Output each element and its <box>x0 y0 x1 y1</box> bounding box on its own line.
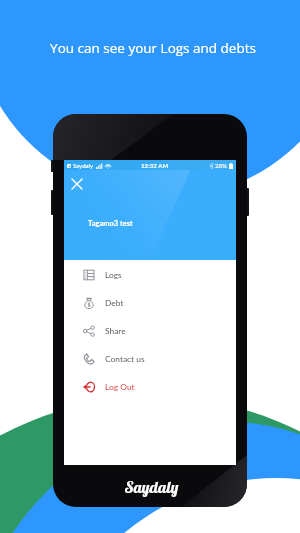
staticText: Log Out <box>105 382 135 392</box>
button[interactable]: Share <box>64 317 236 345</box>
staticText: Saydaly <box>125 477 179 497</box>
staticText: Share <box>105 326 126 336</box>
staticText: You can see your Logs and debts <box>3 39 300 57</box>
button[interactable]: Debt <box>64 289 236 317</box>
staticText: Saydaly <box>73 162 93 169</box>
staticText: 12:32 AM <box>141 162 169 169</box>
staticText: Logs <box>105 270 122 280</box>
button[interactable]: Logs <box>64 261 236 289</box>
button[interactable]: Contact us <box>64 345 236 373</box>
staticText: Tagamo3 test <box>88 219 133 228</box>
button[interactable]: Close <box>66 173 88 195</box>
staticText: Contact us <box>105 354 145 364</box>
staticText: 28% <box>215 162 227 169</box>
staticText: Debt <box>105 298 124 308</box>
button[interactable]: Log Out <box>64 373 236 401</box>
